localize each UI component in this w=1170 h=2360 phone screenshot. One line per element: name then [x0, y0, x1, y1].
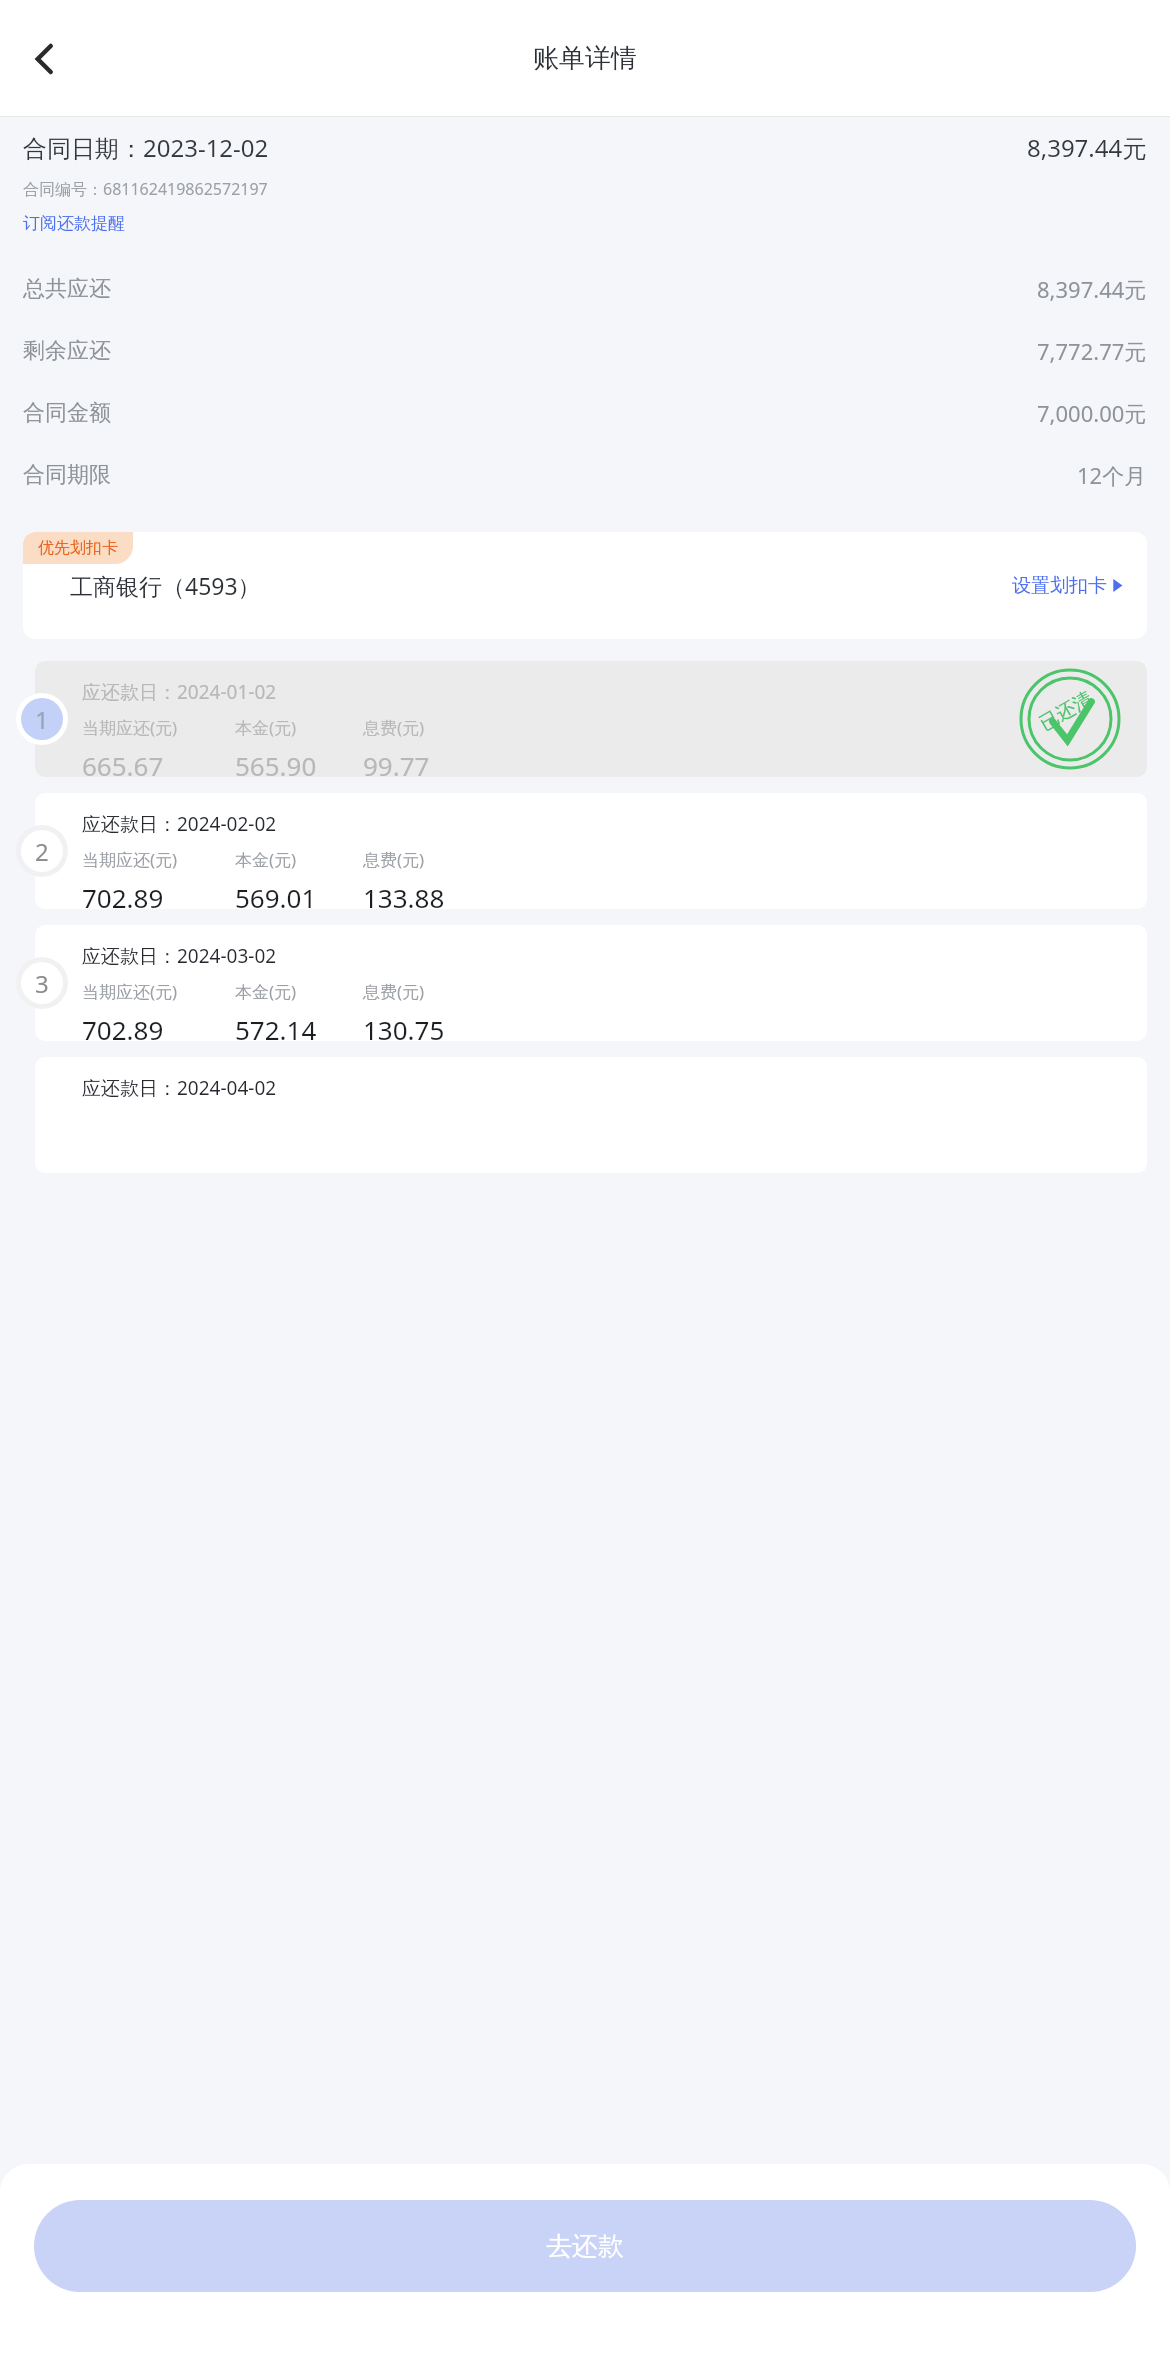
staticText: 7,000.00元	[1037, 398, 1147, 428]
staticText: 订阅还款提醒	[23, 213, 125, 234]
staticText: 息费(元)	[363, 848, 425, 871]
staticText: 7,772.77元	[1037, 336, 1147, 366]
staticText: 息费(元)	[363, 716, 425, 739]
staticText: 设置划扣卡	[1012, 574, 1107, 598]
staticText: 99.77	[363, 748, 430, 777]
staticText: 账单详情	[533, 42, 637, 75]
button[interactable]: 应还款日：2024-04-02	[35, 1057, 1147, 1173]
button[interactable]: 应还款日：2024-01-02	[35, 661, 1147, 777]
staticText: 合同编号：681162419862572197	[23, 178, 268, 200]
staticText: 优先划扣卡	[38, 538, 118, 558]
staticText: 剩余应还	[23, 337, 111, 365]
button[interactable]: Back	[14, 28, 76, 90]
staticText: 3	[35, 967, 49, 1000]
staticText: 8,397.44元	[1027, 131, 1147, 164]
button[interactable]: 应还款日：2024-02-02	[35, 793, 1147, 909]
staticText: 1	[35, 703, 49, 736]
staticText: 565.90	[235, 748, 317, 777]
staticText: 当期应还(元)	[82, 980, 178, 1003]
staticText: 702.89	[82, 1012, 164, 1041]
staticText: 2	[35, 835, 49, 868]
staticText: 息费(元)	[363, 980, 425, 1003]
staticText: 12个月	[1077, 460, 1147, 490]
staticText: 本金(元)	[235, 848, 297, 871]
staticText: 应还款日：2024-04-02	[82, 1075, 277, 1101]
staticText: 当期应还(元)	[82, 716, 178, 739]
button[interactable]: 订阅还款提醒	[23, 213, 125, 234]
staticText: 去还款	[546, 2230, 624, 2263]
staticText: 合同日期：2023-12-02	[23, 131, 269, 164]
button[interactable]: 去还款	[34, 2200, 1136, 2292]
staticText: 应还款日：2024-03-02	[82, 943, 277, 969]
staticText: 合同期限	[23, 461, 111, 489]
staticText: 572.14	[235, 1012, 317, 1041]
staticText: 130.75	[363, 1012, 445, 1041]
staticText: 已还清	[1035, 687, 1097, 736]
staticText: 本金(元)	[235, 716, 297, 739]
staticText: 合同金额	[23, 399, 111, 427]
staticText: 665.67	[82, 748, 164, 777]
staticText: 702.89	[82, 880, 164, 909]
staticText: 应还款日：2024-02-02	[82, 811, 277, 837]
staticText: 工商银行（4593）	[70, 570, 261, 601]
staticText: 569.01	[235, 880, 317, 909]
button[interactable]: 应还款日：2024-03-02	[35, 925, 1147, 1041]
staticText: 8,397.44元	[1037, 274, 1147, 304]
staticText: 133.88	[363, 880, 445, 909]
staticText: 当期应还(元)	[82, 848, 178, 871]
staticText: 本金(元)	[235, 980, 297, 1003]
staticText: 总共应还	[23, 275, 111, 303]
button[interactable]: 优先划扣卡	[23, 532, 1147, 639]
staticText: 应还款日：2024-01-02	[82, 679, 277, 705]
